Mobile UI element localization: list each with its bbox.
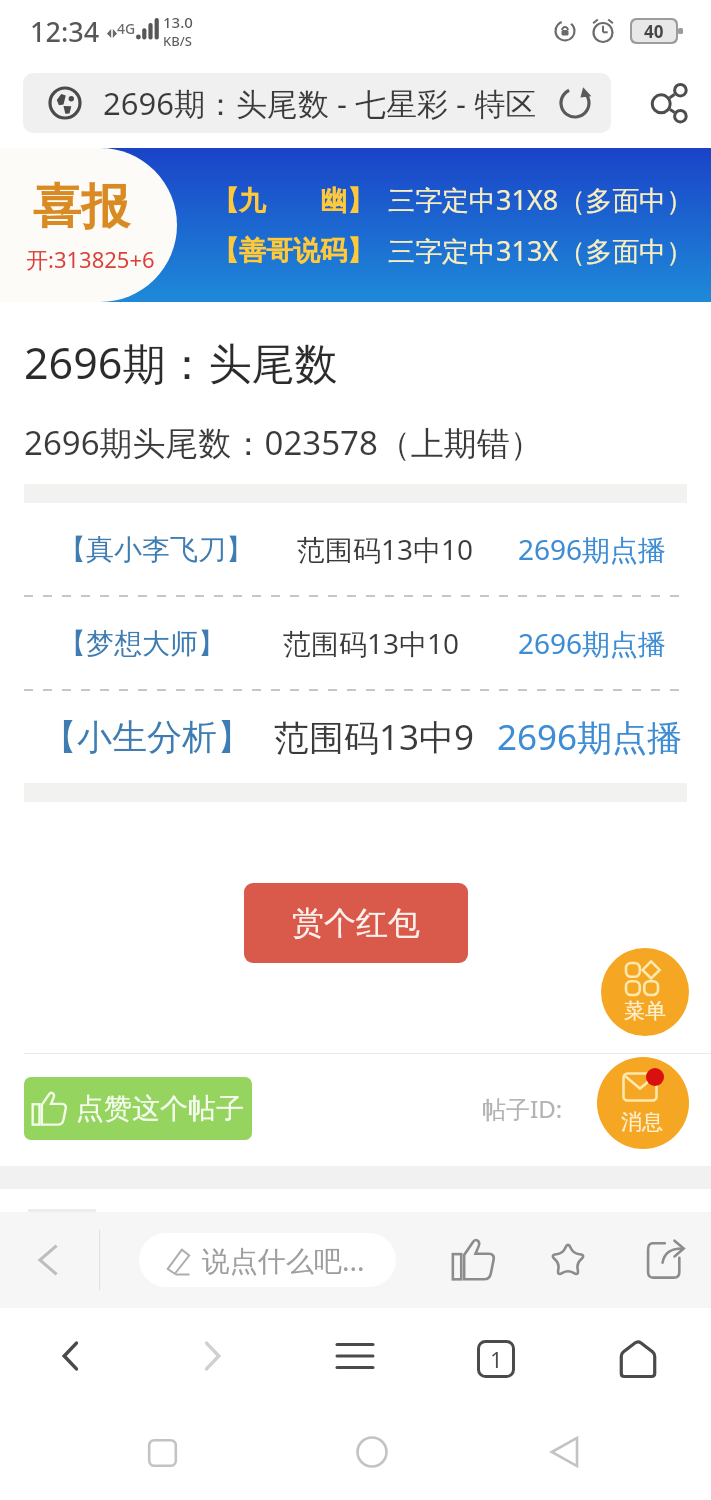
staticText: KB/S	[163, 32, 192, 50]
staticText: 范围码13中10	[297, 530, 474, 568]
staticText: 12:34	[30, 13, 100, 50]
button[interactable]: Share	[637, 70, 703, 136]
staticText: 40	[644, 20, 664, 42]
staticText: 2696期点播	[497, 713, 683, 761]
button[interactable]: 说点什么吧...	[139, 1233, 396, 1287]
staticText: 【梦想大师】	[58, 626, 226, 661]
staticText: 1	[490, 1344, 503, 1374]
staticText: 赏个红包	[292, 903, 420, 943]
other: Site info	[48, 86, 82, 120]
button[interactable]: 【小生分析】	[0, 691, 711, 783]
button[interactable]: Favorite	[528, 1225, 608, 1295]
button[interactable]: Tabs	[451, 1314, 541, 1404]
staticText: 范围码13中9	[274, 713, 475, 761]
button[interactable]: 【梦想大师】	[0, 597, 711, 689]
button[interactable]: Share	[627, 1225, 707, 1295]
button[interactable]: 消息 Messages	[597, 1057, 689, 1149]
button[interactable]: Recents	[122, 1413, 202, 1493]
button[interactable]: 菜单 Menu	[601, 948, 689, 1036]
button[interactable]: Back	[525, 1412, 605, 1492]
staticText: 2696期头尾数：023578（上期错）	[24, 420, 543, 465]
staticText: 喜报	[33, 177, 129, 237]
staticText: 三字定中313X（多面中）	[388, 232, 694, 269]
button[interactable]: 喜报	[0, 148, 711, 302]
staticText: 【九 幽】	[212, 181, 374, 218]
staticText: 说点什么吧...	[202, 1241, 365, 1279]
staticText: 三字定中31X8（多面中）	[388, 181, 694, 218]
other: Refresh	[558, 86, 592, 120]
button[interactable]: Home	[593, 1314, 683, 1404]
staticText: 2696期：头尾数 - 七星彩 - 特区	[103, 82, 537, 124]
staticText: 2696期点播	[518, 530, 667, 568]
staticText: 13.0	[163, 12, 193, 32]
button[interactable]: Home	[332, 1412, 412, 1492]
button[interactable]: 点赞这个帖子	[24, 1077, 252, 1140]
button[interactable]: Site info	[23, 73, 611, 133]
button[interactable]: 【真小李飞刀】	[0, 503, 711, 595]
staticText: 消息	[621, 1109, 663, 1135]
staticText: 【小生分析】	[42, 715, 252, 759]
staticText: 开:313825+6	[26, 244, 155, 274]
staticText: 2696期：头尾数	[24, 333, 338, 392]
button[interactable]: Back	[0, 1212, 98, 1308]
staticText: 2696期点播	[518, 624, 667, 662]
staticText: 帖子ID:	[482, 1092, 563, 1125]
staticText: 菜单	[624, 998, 666, 1024]
staticText: 点赞这个帖子	[76, 1091, 244, 1126]
button[interactable]: Like	[433, 1225, 513, 1295]
button[interactable]: Menu	[310, 1311, 400, 1401]
button[interactable]: 赏个红包	[244, 883, 468, 963]
staticText: 范围码13中10	[283, 624, 460, 662]
staticText: 【善哥说码】	[212, 234, 374, 268]
button[interactable]: Forward	[167, 1311, 257, 1401]
button[interactable]: Back	[26, 1311, 116, 1401]
staticText: 4G	[117, 19, 136, 38]
staticText: 【真小李飞刀】	[58, 532, 254, 567]
